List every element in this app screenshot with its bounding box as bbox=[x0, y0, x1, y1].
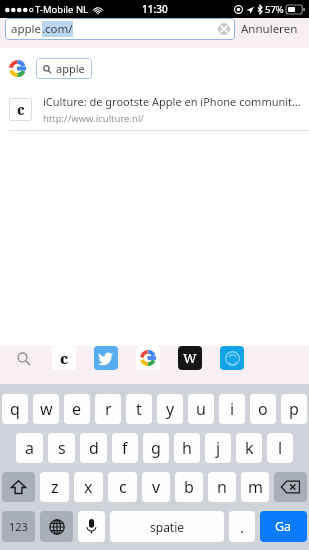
staticText: m bbox=[248, 476, 263, 498]
staticText: u bbox=[196, 398, 206, 420]
button[interactable]: Dictate bbox=[78, 511, 105, 542]
button[interactable]: Change keyboard language bbox=[40, 511, 73, 542]
staticText: w bbox=[40, 398, 53, 420]
button[interactable]: i bbox=[219, 394, 245, 424]
button[interactable]: Google bbox=[136, 346, 160, 370]
button[interactable]: w bbox=[33, 394, 59, 424]
staticText: T-Mobile NL bbox=[35, 3, 89, 16]
button[interactable]: Backspace bbox=[274, 472, 307, 502]
button[interactable]: apple bbox=[5, 18, 235, 40]
button[interactable]: o bbox=[250, 394, 276, 424]
staticText: g bbox=[151, 437, 161, 459]
staticText: s bbox=[58, 437, 66, 459]
staticText: c bbox=[119, 476, 127, 498]
staticText: j bbox=[216, 437, 221, 459]
button[interactable]: . bbox=[229, 511, 255, 542]
button[interactable]: z bbox=[40, 472, 69, 502]
button[interactable]: s bbox=[48, 433, 75, 463]
button[interactable]: u bbox=[188, 394, 214, 424]
button[interactable]: h bbox=[174, 433, 200, 463]
staticText: Annuleren bbox=[241, 21, 298, 37]
button[interactable]: k bbox=[236, 433, 262, 463]
button[interactable]: x bbox=[74, 472, 103, 502]
staticText: i bbox=[230, 398, 235, 420]
button[interactable]: v bbox=[142, 472, 170, 502]
staticText: r bbox=[105, 398, 112, 420]
staticText: .com/ bbox=[42, 21, 73, 37]
button[interactable]: m bbox=[241, 472, 269, 502]
button[interactable]: Search bbox=[12, 347, 34, 369]
button[interactable]: l bbox=[267, 433, 293, 463]
staticText: 57% bbox=[265, 3, 284, 16]
button[interactable]: c bbox=[108, 472, 137, 502]
button[interactable]: apple bbox=[36, 58, 92, 79]
button[interactable]: c bbox=[0, 88, 309, 131]
button[interactable]: a bbox=[16, 433, 43, 463]
button[interactable]: t bbox=[126, 394, 152, 424]
staticText: Ga bbox=[275, 518, 292, 535]
staticText: . bbox=[240, 517, 245, 537]
button[interactable]: iCulture bbox=[52, 346, 76, 370]
button[interactable]: Shift bbox=[2, 472, 35, 502]
staticText: l bbox=[278, 437, 283, 459]
button[interactable]: Wikipedia bbox=[178, 346, 202, 370]
staticText: a bbox=[25, 437, 34, 459]
staticText: iCulture: de grootste Apple en iPhone co… bbox=[43, 94, 301, 109]
staticText: spatie bbox=[150, 519, 185, 535]
staticText: k bbox=[245, 437, 254, 459]
button[interactable]: g bbox=[143, 433, 169, 463]
staticText: c bbox=[17, 100, 25, 119]
button[interactable]: n bbox=[208, 472, 236, 502]
staticText: W bbox=[183, 349, 197, 367]
button[interactable]: Ga bbox=[260, 511, 307, 542]
button[interactable]: f bbox=[112, 433, 138, 463]
button[interactable]: p bbox=[281, 394, 307, 424]
button[interactable]: Clear text bbox=[218, 23, 230, 35]
button[interactable]: y bbox=[157, 394, 183, 424]
button[interactable]: j bbox=[205, 433, 231, 463]
staticText: p bbox=[289, 398, 299, 420]
staticText: f bbox=[122, 437, 128, 459]
staticText: b bbox=[184, 476, 194, 498]
button[interactable]: 123 bbox=[2, 511, 35, 542]
staticText: apple bbox=[11, 21, 42, 37]
staticText: 123 bbox=[9, 519, 28, 534]
staticText: e bbox=[72, 398, 82, 420]
button[interactable]: d bbox=[80, 433, 107, 463]
staticText: y bbox=[166, 398, 175, 420]
staticText: n bbox=[217, 476, 227, 498]
staticText: q bbox=[10, 398, 20, 420]
staticText: http://www.iculture.nl/ bbox=[43, 112, 144, 125]
staticText: c bbox=[60, 348, 69, 368]
button[interactable]: Annuleren bbox=[235, 18, 304, 40]
staticText: o bbox=[258, 398, 268, 420]
staticText: 11:30 bbox=[142, 2, 168, 16]
staticText: d bbox=[89, 437, 99, 459]
staticText: v bbox=[152, 476, 161, 498]
button[interactable]: r bbox=[95, 394, 121, 424]
button[interactable]: Twitter bbox=[94, 346, 118, 370]
staticText: h bbox=[182, 437, 192, 459]
staticText: t bbox=[136, 398, 142, 420]
staticText: apple bbox=[56, 61, 85, 76]
staticText: x bbox=[84, 476, 93, 498]
staticText: z bbox=[51, 476, 59, 498]
button[interactable]: spatie bbox=[110, 511, 224, 542]
button[interactable]: b bbox=[175, 472, 203, 502]
button[interactable]: q bbox=[2, 394, 28, 424]
button[interactable]: e bbox=[64, 394, 90, 424]
button[interactable]: Bookmark bbox=[220, 346, 244, 370]
